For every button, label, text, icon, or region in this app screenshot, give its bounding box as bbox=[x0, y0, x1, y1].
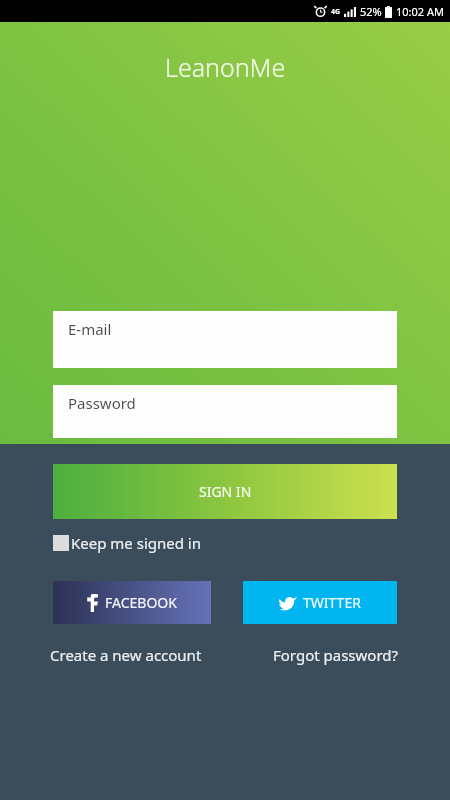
button[interactable]: Keep me signed in bbox=[53, 530, 201, 556]
staticText: Create a new account bbox=[50, 645, 202, 665]
button[interactable]: Password bbox=[53, 385, 397, 438]
button[interactable]: Create a new account bbox=[50, 645, 202, 665]
staticText: 10:02 AM bbox=[396, 4, 444, 19]
button[interactable]: Forgot password? bbox=[273, 645, 399, 665]
staticText: E-mail bbox=[68, 319, 112, 339]
staticText: Keep me signed in bbox=[71, 533, 201, 553]
staticText: Forgot password? bbox=[273, 645, 399, 665]
staticText: LeanonMe bbox=[165, 50, 286, 84]
staticText: TWITTER bbox=[303, 593, 361, 612]
staticText: FACEBOOK bbox=[105, 593, 177, 612]
staticText: Password bbox=[68, 393, 136, 413]
button[interactable]: E-mail bbox=[53, 311, 397, 368]
button[interactable]: SIGN IN bbox=[53, 464, 397, 519]
staticText: 52% bbox=[360, 4, 382, 19]
staticText: SIGN IN bbox=[199, 482, 252, 501]
button[interactable]: FACEBOOK bbox=[53, 581, 211, 624]
button[interactable]: TWITTER bbox=[243, 581, 397, 624]
staticText: 4G bbox=[331, 7, 341, 17]
